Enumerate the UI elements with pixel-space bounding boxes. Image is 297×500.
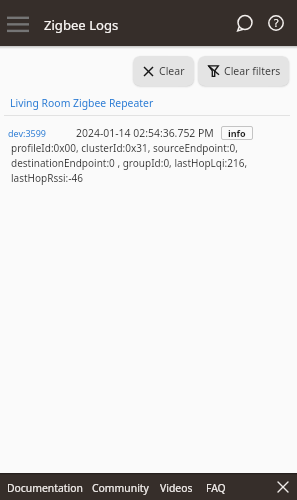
- button[interactable]: FAQ: [206, 477, 226, 499]
- staticText: FAQ: [206, 481, 226, 495]
- staticText: 2024-01-14 02:54:36.752 PM: [76, 126, 214, 140]
- staticText: Clear: [159, 64, 185, 78]
- button[interactable]: Living Room Zigbee Repeater: [10, 96, 154, 110]
- button[interactable]: Videos: [160, 477, 193, 499]
- staticText: profileId:0x00, clusterId:0x31, sourceEn…: [11, 141, 253, 185]
- staticText: info: [228, 127, 246, 139]
- button[interactable]: Help: [260, 7, 292, 39]
- button[interactable]: Chat: [229, 7, 261, 39]
- button[interactable]: Clear filters: [198, 56, 289, 86]
- staticText: ?: [274, 16, 279, 30]
- staticText: Videos: [160, 481, 193, 495]
- button[interactable]: Community: [92, 477, 149, 499]
- staticText: Documentation: [7, 481, 83, 495]
- button[interactable]: info: [221, 126, 253, 140]
- button[interactable]: dev:3599: [8, 127, 47, 139]
- staticText: Clear filters: [224, 64, 281, 78]
- button[interactable]: Clear: [133, 56, 194, 86]
- staticText: Zigbee Logs: [44, 16, 119, 34]
- staticText: Community: [92, 481, 149, 495]
- button[interactable]: Open navigation menu: [0, 5, 36, 41]
- button[interactable]: Close: [272, 476, 294, 498]
- button[interactable]: Documentation: [7, 477, 83, 499]
